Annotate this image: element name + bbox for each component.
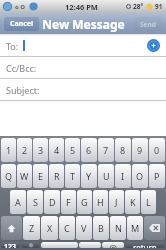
staticText: Subject: [6, 84, 40, 96]
staticText: 28° [133, 2, 144, 11]
button[interactable]: To: [0, 35, 166, 56]
staticText: 6 [86, 144, 92, 156]
button[interactable]: 1 [1, 138, 16, 162]
staticText: Z [29, 222, 35, 234]
staticText: Cancel [10, 19, 34, 29]
button[interactable]: R [49, 164, 64, 188]
staticText: Q [5, 170, 13, 182]
staticText: 4 [54, 144, 60, 156]
button[interactable]: 5 [65, 138, 80, 162]
button[interactable]: Shift [1, 216, 22, 240]
staticText: S [33, 196, 38, 208]
staticText: return [133, 242, 157, 248]
button[interactable]: Send [134, 17, 162, 31]
button[interactable]: 123 [1, 242, 20, 248]
staticText: 1 [6, 144, 12, 156]
button[interactable]: H [93, 190, 108, 214]
staticText: F [66, 196, 71, 208]
button[interactable]: Q [1, 164, 16, 188]
button[interactable]: Y [81, 164, 97, 188]
staticText: V [81, 222, 87, 234]
button[interactable]: 9 [132, 138, 148, 162]
staticText: X [47, 222, 53, 234]
staticText: 3 [38, 144, 44, 156]
staticText: D [49, 196, 56, 208]
button[interactable]: P [149, 164, 165, 188]
button[interactable]: Dictate [21, 242, 40, 248]
staticText: 9 [137, 144, 143, 156]
button[interactable]: 8 [115, 138, 131, 162]
button[interactable]: B [93, 216, 109, 240]
button[interactable]: 3 [33, 138, 48, 162]
button[interactable]: G [77, 190, 92, 214]
button[interactable]: I [115, 164, 131, 188]
staticText: H [97, 196, 104, 208]
staticText: O [136, 170, 144, 182]
staticText: 2 [22, 144, 28, 156]
staticText: . [89, 242, 92, 248]
staticText: B [98, 222, 104, 234]
staticText: L [146, 196, 151, 208]
staticText: E [38, 170, 44, 182]
staticText: 5 [70, 144, 76, 156]
button[interactable]: Z [23, 216, 40, 240]
staticText: 8 [120, 144, 126, 156]
staticText: P [154, 170, 160, 182]
button[interactable]: C [59, 216, 75, 240]
staticText: C [64, 222, 70, 234]
staticText: W [20, 170, 29, 182]
button[interactable]: D [44, 190, 60, 214]
button[interactable]: O [132, 164, 148, 188]
button[interactable]: M [127, 216, 143, 240]
button[interactable]: 0 [149, 138, 165, 162]
button[interactable]: Cc/Bcc: [0, 57, 166, 78]
button[interactable]: . [79, 242, 101, 248]
button[interactable]: 4 [49, 138, 64, 162]
button[interactable]: Cancel [4, 17, 39, 31]
staticText: 123 [4, 242, 17, 248]
button[interactable]: W [17, 164, 32, 188]
button[interactable]: A [10, 190, 26, 214]
staticText: 7 [103, 144, 109, 156]
staticText: I [121, 170, 125, 182]
staticText: M [131, 222, 140, 234]
button[interactable]: V [76, 216, 92, 240]
button[interactable]: T [65, 164, 80, 188]
staticText: K [130, 196, 136, 208]
staticText: N [115, 222, 122, 234]
button[interactable]: Backspace [144, 216, 165, 240]
staticText: @ [109, 242, 118, 248]
staticText: R [54, 170, 60, 182]
button[interactable]: L [141, 190, 156, 214]
staticText: 91 [155, 2, 163, 11]
staticText: Send [140, 20, 156, 29]
button[interactable]: E [33, 164, 48, 188]
button[interactable]: X [41, 216, 58, 240]
staticText: A [15, 196, 21, 208]
button[interactable]: 7 [98, 138, 114, 162]
button[interactable]: S [27, 190, 43, 214]
staticText: T [70, 170, 76, 182]
button[interactable]: U [98, 164, 114, 188]
staticText: G [81, 196, 88, 208]
staticText: 12:46 PM [65, 2, 98, 12]
staticText: Y [86, 170, 92, 182]
button[interactable]: Add contact [147, 39, 160, 52]
staticText: 0 [154, 144, 160, 156]
button[interactable]: J [109, 190, 124, 214]
staticText: To: [6, 40, 19, 52]
button[interactable]: F [61, 190, 76, 214]
button[interactable]: @ [102, 242, 124, 248]
button[interactable]: K [125, 190, 140, 214]
button[interactable]: 6 [81, 138, 97, 162]
button[interactable]: 2 [17, 138, 32, 162]
button[interactable] [41, 242, 78, 248]
staticText: Cc/Bcc: [6, 62, 37, 74]
button[interactable]: return [125, 242, 165, 248]
staticText: New Message [42, 16, 125, 32]
button[interactable]: Subject: [0, 79, 166, 100]
staticText: J [115, 196, 118, 208]
staticText: o O [15, 3, 26, 11]
button[interactable]: N [110, 216, 126, 240]
staticText: U [103, 170, 110, 182]
